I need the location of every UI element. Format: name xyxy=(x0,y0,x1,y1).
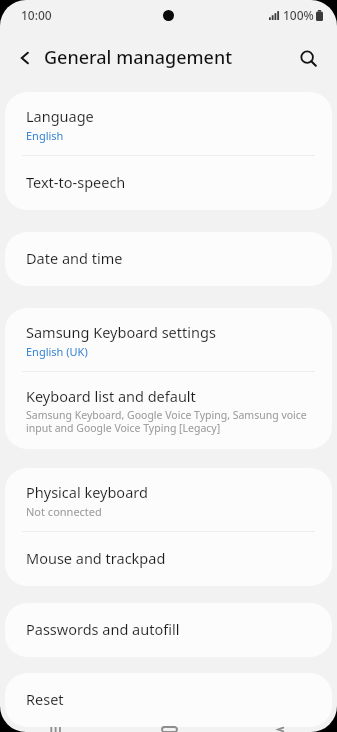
button[interactable]: Back xyxy=(9,42,41,74)
staticText: Samsung Keyboard settings xyxy=(26,322,216,342)
button[interactable]: Date and time xyxy=(5,232,332,286)
button[interactable]: Text-to-speech xyxy=(5,156,332,210)
staticText: Samsung Keyboard, Google Voice Typing, S… xyxy=(26,408,314,435)
staticText: Physical keyboard xyxy=(26,482,148,502)
button[interactable]: Physical keyboard xyxy=(5,468,332,531)
staticText: Date and time xyxy=(26,248,123,268)
staticText: Text-to-speech xyxy=(26,172,126,192)
button[interactable]: Back xyxy=(225,727,337,732)
button[interactable]: Recents xyxy=(0,727,113,732)
staticText: 100% xyxy=(283,7,314,23)
button[interactable]: Home xyxy=(113,727,225,732)
staticText: Mouse and trackpad xyxy=(26,548,166,568)
staticText: English (UK) xyxy=(26,344,88,359)
staticText: Passwords and autofill xyxy=(26,619,180,639)
staticText: Reset xyxy=(26,689,64,709)
button[interactable]: Samsung Keyboard settings xyxy=(5,308,332,371)
staticText: English xyxy=(26,128,64,143)
staticText: Not connected xyxy=(26,504,102,519)
staticText: Language xyxy=(26,106,94,126)
button[interactable]: Reset xyxy=(5,673,332,727)
button[interactable]: Mouse and trackpad xyxy=(5,532,332,586)
button[interactable]: Search xyxy=(292,42,324,74)
button[interactable]: Keyboard list and default xyxy=(5,372,332,449)
button[interactable]: Language xyxy=(5,92,332,155)
staticText: General management xyxy=(44,45,233,70)
staticText: 10:00 xyxy=(21,7,52,23)
staticText: Keyboard list and default xyxy=(26,386,196,406)
button[interactable]: Passwords and autofill xyxy=(5,603,332,657)
